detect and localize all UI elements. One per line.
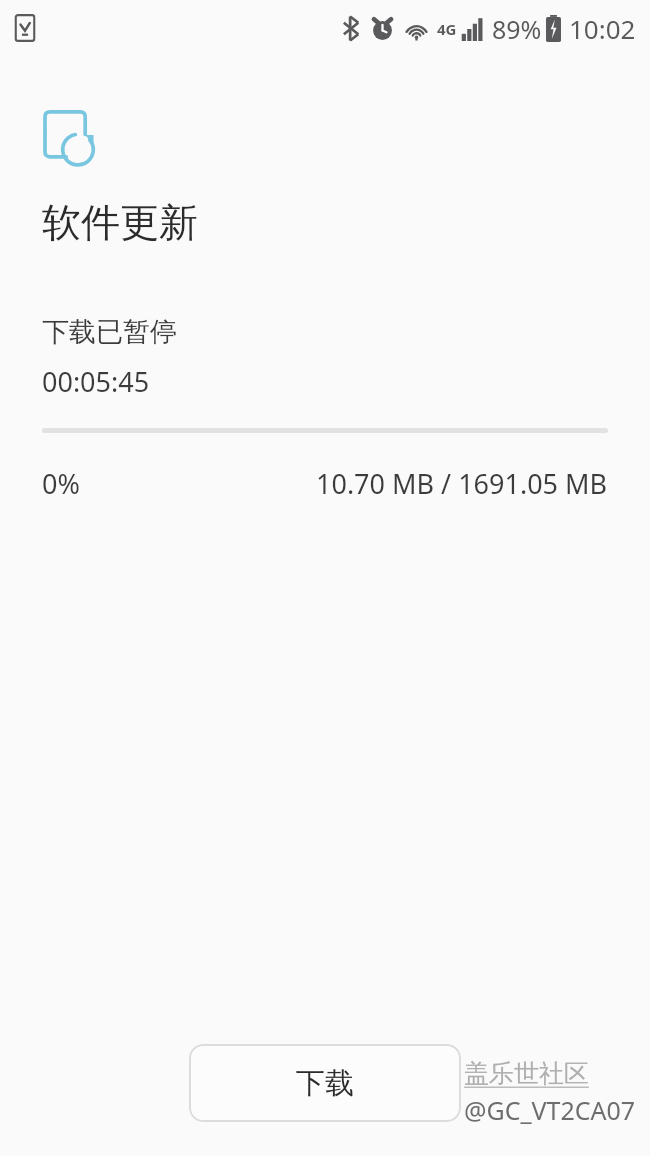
staticText: 4G — [437, 19, 457, 39]
staticText: 软件更新 — [42, 198, 198, 247]
staticText: 盖乐世社区 — [464, 1058, 589, 1089]
staticText: 0% — [42, 465, 80, 502]
staticText: 10:02 — [569, 11, 636, 46]
staticText: 下载 — [296, 1065, 354, 1102]
button[interactable]: 下载 — [189, 1044, 461, 1122]
staticText: 89% — [492, 12, 542, 46]
staticText: 10.70 MB / 1691.05 MB — [316, 465, 608, 502]
staticText: 00:05:45 — [42, 363, 150, 400]
staticText: 下载已暂停 — [42, 315, 177, 349]
staticText: @GC_VT2CA07 — [464, 1093, 636, 1127]
other: Software update — [42, 110, 102, 170]
